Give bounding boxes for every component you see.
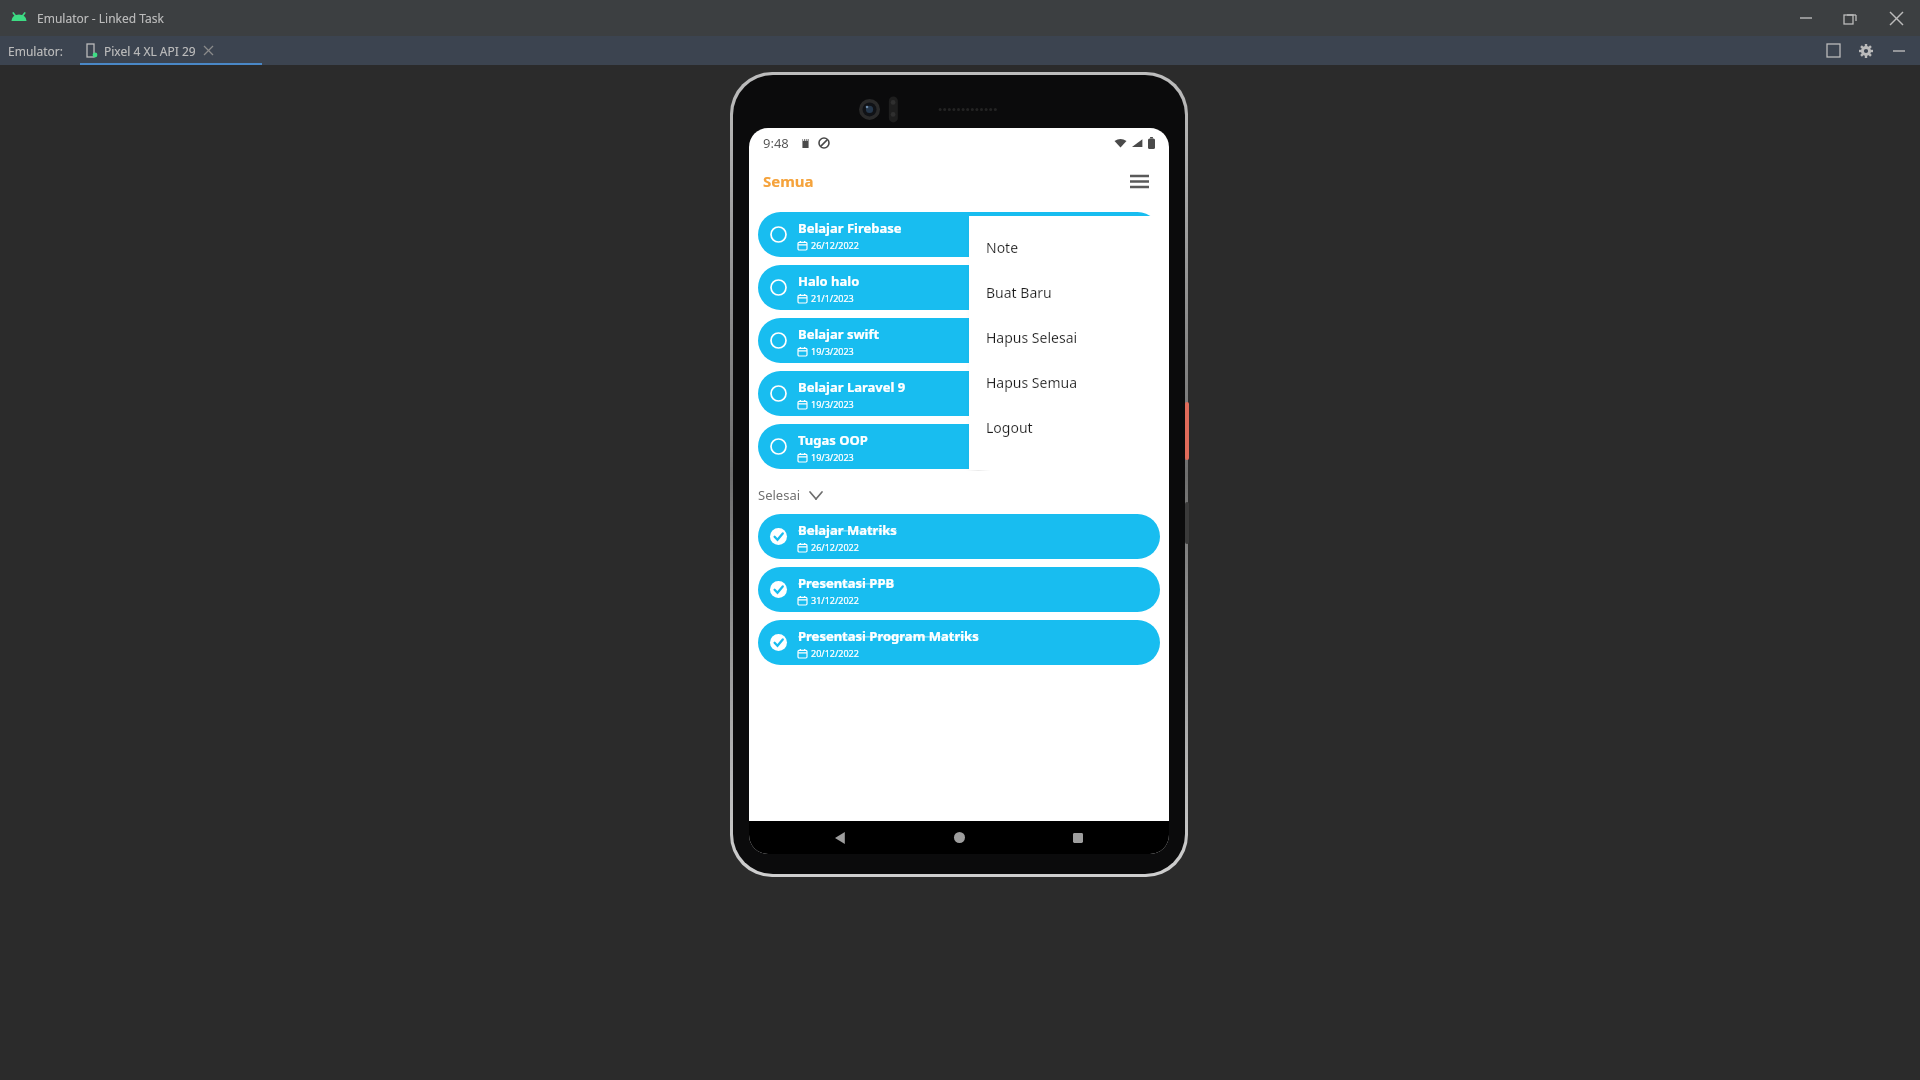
staticText: Belajar Matriks <box>798 521 897 539</box>
button[interactable]: Belajar Laravel 9 <box>758 371 1160 416</box>
button[interactable]: Presentasi Program Matriks <box>758 620 1160 665</box>
staticText: Belajar Firebase <box>798 219 902 237</box>
button[interactable]: Hapus Semua <box>969 360 1169 405</box>
button[interactable]: Tugas OOP <box>758 424 1160 469</box>
button[interactable]: Minimise <box>1784 0 1828 36</box>
button[interactable]: Recent apps <box>1051 821 1105 854</box>
button[interactable]: Home <box>932 821 986 854</box>
staticText: Presentasi PPB <box>798 574 895 592</box>
staticText: Hapus Selesai <box>986 328 1078 347</box>
button[interactable]: Hapus Selesai <box>969 315 1169 360</box>
staticText: Tugas OOP <box>798 431 868 449</box>
button[interactable]: Close <box>1872 0 1920 36</box>
staticText: 19/3/2023 <box>811 398 854 410</box>
staticText: 19/3/2023 <box>811 345 854 357</box>
staticText: 19/3/2023 <box>811 451 854 463</box>
button[interactable]: Selesai <box>758 482 1169 508</box>
staticText: Halo halo <box>798 272 860 290</box>
button[interactable]: Pixel 4 XL API 29 <box>85 36 219 65</box>
staticText: Pixel 4 XL API 29 <box>104 43 196 59</box>
staticText: Belajar Laravel 9 <box>798 378 906 396</box>
staticText: Logout <box>986 418 1033 437</box>
staticText: 9:48 <box>763 134 789 152</box>
button[interactable]: Presentasi PPB <box>758 567 1160 612</box>
staticText: 31/12/2022 <box>811 594 859 606</box>
staticText: Buat Baru <box>986 283 1052 302</box>
staticText: Emulator - Linked Task <box>37 10 164 26</box>
staticText: Belajar swift <box>798 325 880 343</box>
staticText: 26/12/2022 <box>811 239 859 251</box>
button[interactable]: Belajar Matriks <box>758 514 1160 559</box>
button[interactable]: Menu <box>1119 161 1159 201</box>
button[interactable]: Settings <box>1850 36 1882 65</box>
staticText: Hapus Semua <box>986 373 1078 392</box>
staticText: Semua <box>763 171 814 191</box>
button[interactable]: Hide <box>1882 36 1916 65</box>
button[interactable]: Buat Baru <box>969 270 1169 315</box>
button[interactable]: Belajar Firebase <box>758 212 1160 257</box>
staticText: Emulator: <box>8 43 63 59</box>
button[interactable]: Back <box>814 821 868 854</box>
button[interactable]: Open in window <box>1816 36 1850 65</box>
staticText: Note <box>986 238 1019 257</box>
staticText: Presentasi Program Matriks <box>798 627 979 645</box>
staticText: Selesai <box>758 486 801 504</box>
button[interactable]: Logout <box>969 405 1169 450</box>
staticText: 26/12/2022 <box>811 541 859 553</box>
staticText: 21/1/2023 <box>811 292 854 304</box>
staticText: 20/12/2022 <box>811 647 859 659</box>
button[interactable]: Halo halo <box>758 265 1160 310</box>
button[interactable]: Restore <box>1828 0 1872 36</box>
button[interactable]: Note <box>969 225 1169 270</box>
button[interactable]: Belajar swift <box>758 318 1160 363</box>
